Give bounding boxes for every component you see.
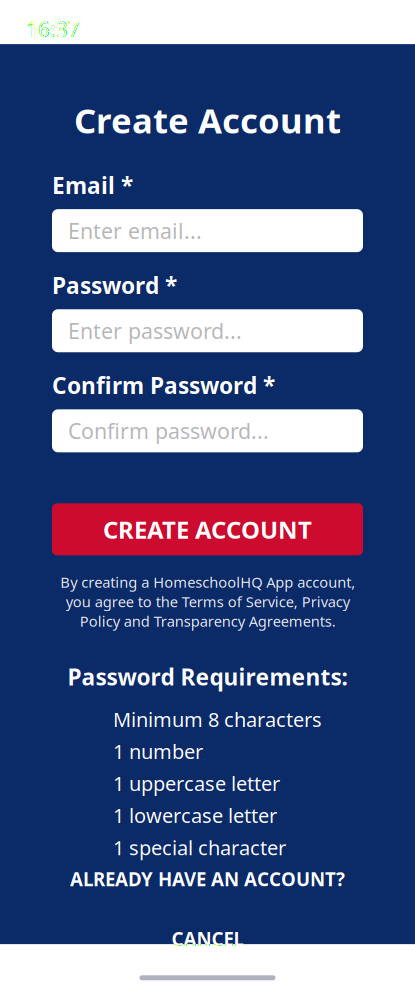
button[interactable]: Enter email... [52,209,363,252]
button[interactable]: Enter password... [52,309,363,352]
staticText: 1 lowercase letter [113,802,277,829]
staticText: Password Requirements: [67,662,347,692]
button[interactable]: CANCEL [52,920,363,957]
staticText: Confirm Password * [52,370,275,400]
staticText: Email * [52,170,133,200]
button[interactable]: ALREADY HAVE AN ACCOUNT? [52,861,363,897]
staticText: By creating a HomeschoolHQ App account, … [60,572,355,631]
button[interactable]: Confirm password... [52,409,363,452]
staticText: 1 uppercase letter [113,770,280,797]
staticText: Password * [52,270,177,300]
staticText: 16:37 [26,15,80,43]
staticText: Enter password... [68,317,242,345]
staticText: Minimum 8 characters [113,706,322,732]
staticText: Confirm password... [68,417,269,445]
staticText: 1 number [113,738,203,764]
button[interactable]: CREATE ACCOUNT [52,503,363,555]
staticText: Enter email... [68,216,202,245]
staticText: CANCEL [171,926,243,951]
staticText: ALREADY HAVE AN ACCOUNT? [70,867,345,891]
staticText: Create Account [74,97,341,143]
staticText: CREATE ACCOUNT [103,513,312,545]
staticText: 1 special character [113,834,286,861]
